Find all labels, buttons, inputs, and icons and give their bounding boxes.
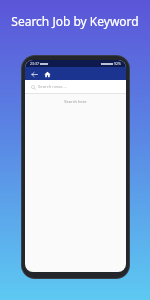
- staticText: Search here: [25, 99, 126, 104]
- staticText: 92%: [114, 61, 121, 66]
- button[interactable]: Back: [29, 69, 39, 79]
- staticText: Search Job by Keyword: [0, 13, 150, 29]
- button[interactable]: Search news ...: [25, 80, 126, 94]
- staticText: 23:37: [30, 61, 39, 66]
- button[interactable]: Home: [42, 69, 52, 79]
- staticText: Search news ...: [38, 84, 67, 90]
